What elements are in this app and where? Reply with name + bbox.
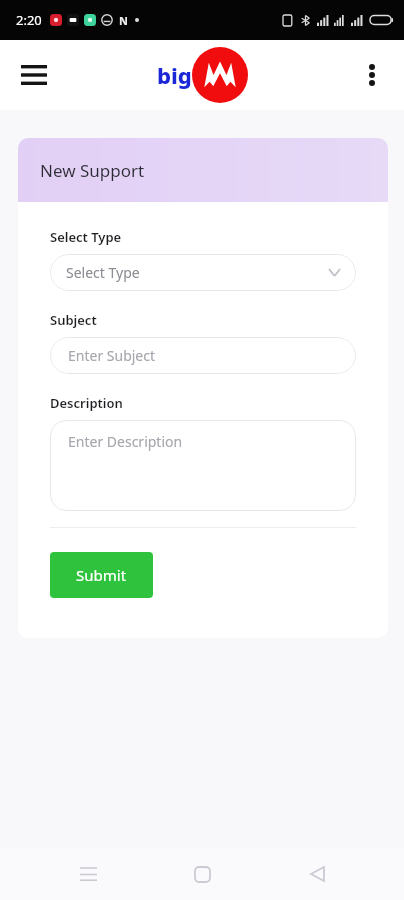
- staticText: New Support: [40, 159, 145, 182]
- button[interactable]: Recent apps: [61, 848, 115, 900]
- staticText: N: [119, 13, 128, 28]
- button[interactable]: More options: [348, 51, 396, 99]
- button[interactable]: Submit: [50, 552, 153, 598]
- staticText: 2:20: [16, 11, 42, 29]
- staticText: Description: [50, 394, 123, 412]
- staticText: Enter Subject: [68, 346, 156, 365]
- button[interactable]: Home: [175, 848, 229, 900]
- button[interactable]: Select Type: [50, 254, 356, 291]
- staticText: Subject: [50, 311, 97, 329]
- button[interactable]: Enter Description: [50, 420, 356, 511]
- staticText: big: [157, 60, 192, 90]
- button[interactable]: Back: [290, 848, 344, 900]
- staticText: Select Type: [66, 263, 140, 282]
- button[interactable]: Open navigation menu: [10, 51, 58, 99]
- staticText: Submit: [76, 565, 127, 585]
- button[interactable]: Enter Subject: [50, 337, 356, 374]
- button[interactable]: bigM home: [157, 47, 248, 103]
- staticText: Select Type: [50, 228, 122, 246]
- staticText: Enter Description: [68, 432, 183, 451]
